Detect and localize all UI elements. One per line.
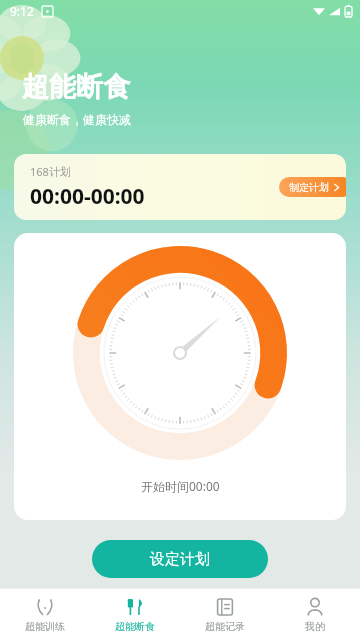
other: 超能训练 bbox=[35, 597, 55, 617]
button[interactable]: 超能记录 bbox=[180, 589, 270, 640]
button[interactable]: 制定计划 bbox=[279, 177, 346, 197]
staticText: 开始时间00:00 bbox=[141, 478, 220, 494]
other: 我的 bbox=[305, 597, 325, 617]
staticText: 9:12 bbox=[10, 3, 34, 19]
button[interactable]: 设定计划 bbox=[92, 540, 268, 578]
other: 超能记录 bbox=[215, 597, 235, 617]
button[interactable]: 超能断食 bbox=[90, 589, 180, 640]
button[interactable]: 我的 bbox=[270, 589, 360, 640]
staticText: 00:00-00:00 bbox=[30, 182, 145, 211]
staticText: 超能断食 bbox=[22, 70, 130, 104]
staticText: 设定计划 bbox=[150, 550, 210, 569]
staticText: 健康断食，健康快减 bbox=[23, 112, 131, 127]
staticText: 超能训练 bbox=[25, 620, 65, 633]
button[interactable]: 超能训练 bbox=[0, 589, 90, 640]
staticText: 超能记录 bbox=[205, 620, 245, 633]
other: 超能断食 bbox=[125, 597, 145, 617]
staticText: 168计划 bbox=[30, 164, 71, 179]
staticText: 制定计划 bbox=[289, 181, 329, 194]
staticText: 超能断食 bbox=[115, 620, 155, 633]
staticText: 我的 bbox=[305, 620, 325, 633]
